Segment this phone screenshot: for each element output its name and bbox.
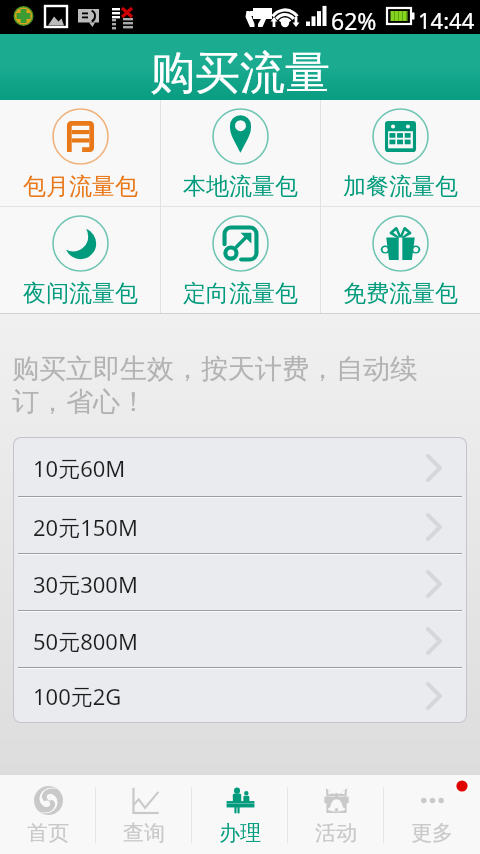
button[interactable]: 100元2G (14, 669, 466, 722)
staticText: 100元2G (33, 681, 122, 711)
staticText: 20元150M (33, 512, 138, 542)
button[interactable]: 更多 (384, 775, 480, 854)
staticText: 免费流量包 (343, 279, 458, 308)
staticText: 查询 (123, 820, 165, 846)
staticText: 夜间流量包 (23, 279, 138, 308)
button[interactable]: 活动 (288, 775, 384, 854)
staticText: 包月流量包 (23, 172, 138, 201)
button[interactable]: 本地流量包 (161, 100, 320, 206)
staticText: 购买立即生效，按天计费，自动续订，省心！ (12, 352, 442, 419)
staticText: 加餐流量包 (343, 172, 458, 201)
button[interactable]: 免费流量包 (321, 207, 480, 313)
button[interactable]: 20元150M (14, 498, 466, 555)
staticText: 14:44 (418, 5, 475, 35)
staticText: 更多 (411, 820, 453, 846)
staticText: 30元300M (33, 569, 138, 599)
staticText: 本地流量包 (183, 172, 298, 201)
staticText: 办理 (219, 820, 261, 846)
staticText: 首页 (27, 820, 69, 846)
staticText: 62% (331, 5, 377, 36)
staticText: 定向流量包 (183, 279, 298, 308)
staticText: 50元800M (33, 626, 138, 656)
staticText: 10元60M (33, 453, 126, 483)
button[interactable]: 30元300M (14, 555, 466, 612)
staticText: 购买流量 (150, 45, 330, 102)
button[interactable]: 夜间流量包 (0, 207, 160, 313)
button[interactable]: 首页 (0, 775, 96, 854)
button[interactable]: 50元800M (14, 612, 466, 669)
button[interactable]: 加餐流量包 (321, 100, 480, 206)
button[interactable]: 定向流量包 (161, 207, 320, 313)
button[interactable]: 10元60M (14, 438, 466, 498)
button[interactable]: 查询 (96, 775, 192, 854)
button[interactable]: 办理 (192, 775, 288, 854)
button[interactable]: 包月流量包 (0, 100, 160, 206)
staticText: 活动 (315, 820, 357, 846)
